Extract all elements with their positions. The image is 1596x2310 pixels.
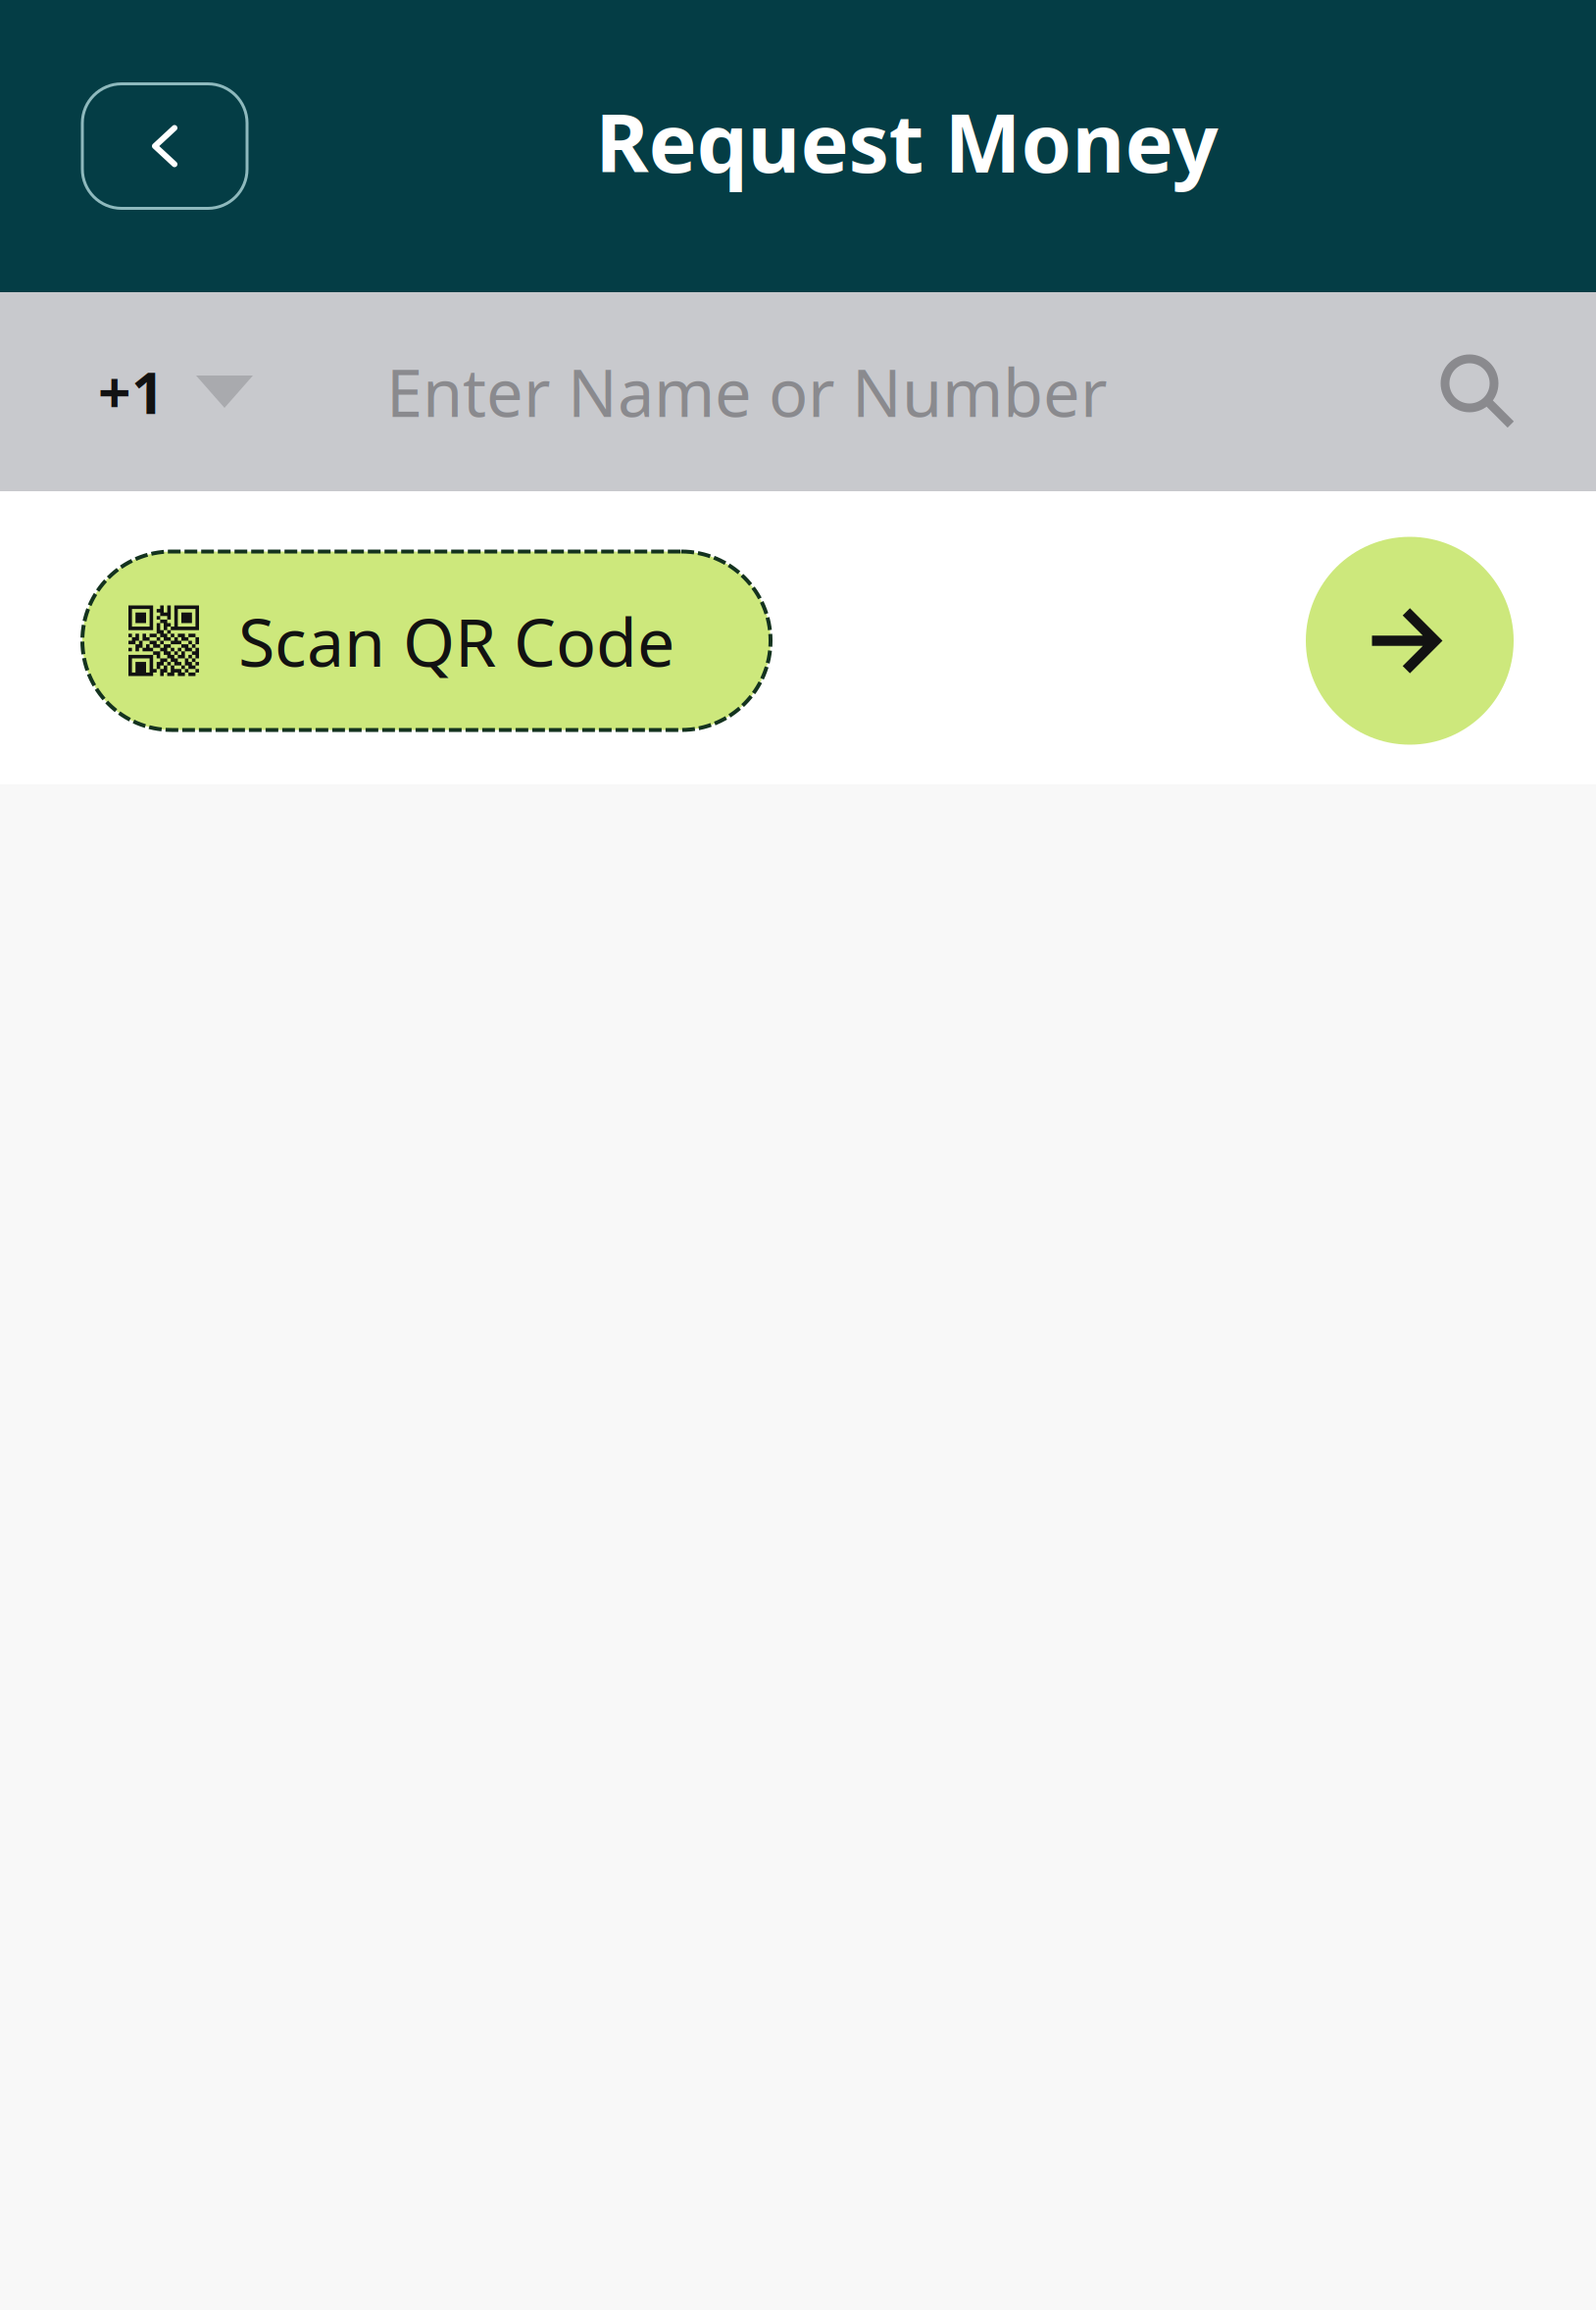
staticText: +1 — [98, 353, 165, 430]
button[interactable]: +1 — [0, 292, 292, 491]
button[interactable]: Continue — [1306, 537, 1514, 745]
button[interactable]: Scan QR Code — [82, 552, 771, 730]
staticText: Request Money — [596, 87, 1218, 195]
staticText: Enter Name or Number — [386, 348, 1108, 435]
staticText: Scan QR Code — [238, 596, 674, 685]
button[interactable]: Back — [82, 84, 247, 208]
button[interactable]: Search — [1402, 292, 1596, 491]
